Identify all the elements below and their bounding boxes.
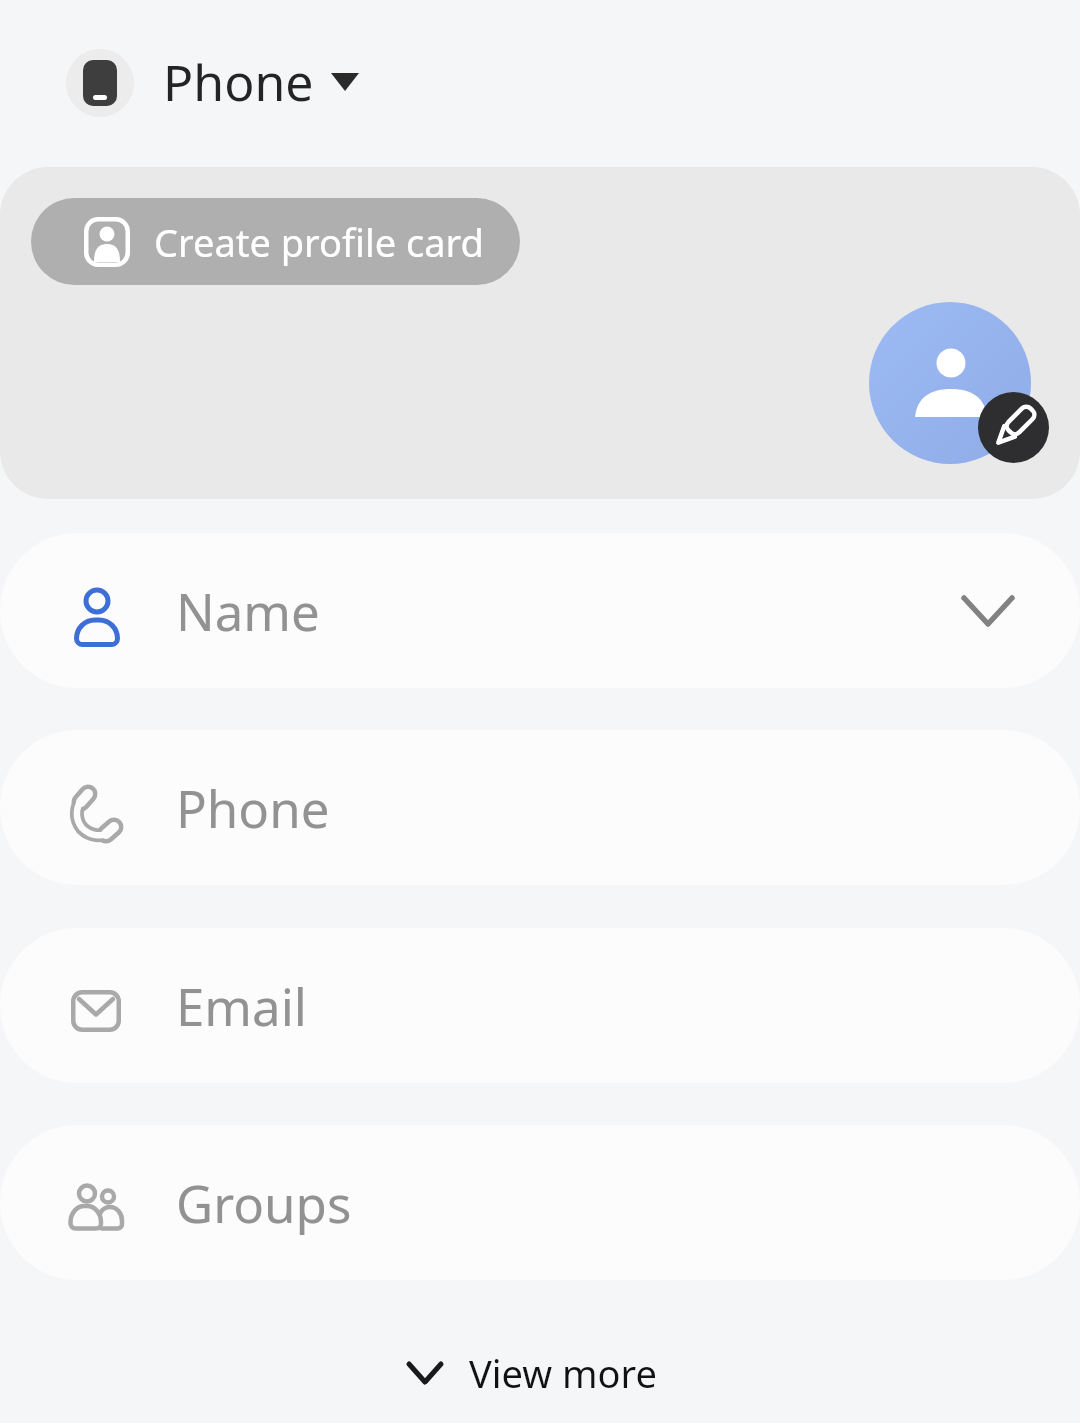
button[interactable]: Create profile card [31,198,520,285]
button[interactable]: Email [0,928,1080,1083]
button[interactable]: Phone [160,48,367,116]
staticText: Phone [176,773,330,842]
button[interactable]: Groups [0,1125,1080,1280]
button[interactable] [978,392,1049,463]
staticText: Email [176,971,307,1040]
button[interactable]: Name [0,533,1080,688]
staticText: Create profile card [154,216,484,268]
button[interactable]: View more [0,1340,1072,1406]
staticText: Phone [163,48,314,116]
button[interactable]: Phone [0,730,1080,885]
staticText: View more [469,1347,657,1399]
staticText: Groups [176,1168,352,1237]
staticText: Name [176,576,320,645]
